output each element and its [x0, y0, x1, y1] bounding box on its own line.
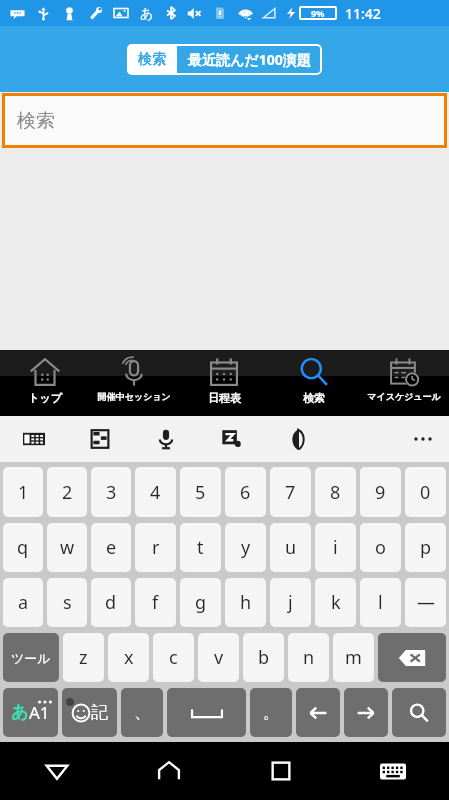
staticText: o — [375, 535, 386, 560]
button[interactable]: 0 — [405, 467, 446, 517]
button[interactable]: Home — [113, 742, 225, 800]
staticText: 4 — [150, 480, 161, 505]
button[interactable]: l — [360, 578, 401, 627]
button[interactable]: g — [180, 578, 221, 627]
staticText: トップ — [28, 391, 62, 405]
button[interactable]: 9 — [360, 467, 401, 517]
staticText: — — [417, 590, 435, 615]
staticText: v — [214, 645, 224, 670]
button[interactable]: 6 — [225, 467, 266, 517]
button[interactable]: 最近読んだ100演題 — [177, 44, 322, 75]
button[interactable]: Voice input — [133, 416, 199, 462]
button[interactable]: Recent apps — [225, 742, 337, 800]
button[interactable]: Backspace — [378, 633, 446, 682]
button[interactable]: Layout options — [67, 416, 133, 462]
staticText: 9% — [311, 7, 325, 19]
button[interactable]: Move cursor left — [296, 688, 340, 737]
button[interactable]: c — [153, 633, 194, 682]
button[interactable]: k — [315, 578, 356, 627]
button[interactable]: Move cursor right — [344, 688, 388, 737]
button[interactable]: y — [225, 523, 266, 572]
button[interactable]: 5 — [180, 467, 221, 517]
button[interactable]: Search — [392, 688, 446, 737]
staticText: n — [303, 645, 315, 670]
button[interactable]: z — [63, 633, 104, 682]
button[interactable]: i — [315, 523, 356, 572]
staticText: 8 — [330, 480, 341, 505]
button[interactable]: Emoji and symbols — [62, 688, 117, 737]
staticText: 検索 — [17, 109, 55, 133]
button[interactable]: u — [270, 523, 311, 572]
button[interactable]: o — [360, 523, 401, 572]
button[interactable]: t — [180, 523, 221, 572]
staticText: p — [420, 535, 432, 560]
staticText: f — [152, 590, 159, 615]
button[interactable]: m — [333, 633, 374, 682]
button[interactable]: 検索 — [127, 44, 177, 75]
staticText: t — [197, 535, 204, 560]
button[interactable]: Back — [0, 742, 113, 800]
staticText: 開催中セッション — [97, 391, 171, 402]
button[interactable]: d — [91, 578, 131, 627]
button[interactable]: 検索 — [269, 350, 359, 416]
staticText: ツール — [11, 650, 51, 666]
staticText: 11:42 — [345, 4, 381, 23]
staticText: k — [331, 590, 341, 615]
button[interactable]: 8 — [315, 467, 356, 517]
button[interactable]: Switch keyboard — [337, 742, 449, 800]
staticText: h — [240, 590, 252, 615]
button[interactable]: 開催中セッション — [89, 350, 179, 416]
staticText: m — [345, 645, 362, 670]
staticText: e — [106, 535, 117, 560]
staticText: 9 — [375, 480, 386, 505]
button[interactable]: e — [91, 523, 131, 572]
button[interactable]: Input mode — [3, 688, 58, 737]
button[interactable]: 。 — [250, 688, 292, 737]
button[interactable]: 2 — [47, 467, 87, 517]
button[interactable]: p — [405, 523, 446, 572]
button[interactable]: Keyboard layout — [0, 416, 67, 462]
button[interactable]: Handwriting — [199, 416, 265, 462]
button[interactable]: マイスケジュール — [359, 350, 449, 416]
button[interactable]: a — [3, 578, 43, 627]
staticText: マイスケジュール — [367, 391, 441, 402]
staticText: l — [378, 590, 383, 615]
button[interactable]: ツール — [3, 633, 59, 682]
button[interactable]: 日程表 — [179, 350, 269, 416]
button[interactable]: トップ — [0, 350, 89, 416]
staticText: 検索 — [303, 391, 325, 405]
button[interactable]: 、 — [121, 688, 163, 737]
staticText: 検索 — [138, 51, 166, 69]
button[interactable]: h — [225, 578, 266, 627]
button[interactable]: v — [198, 633, 239, 682]
button[interactable]: q — [3, 523, 43, 572]
staticText: 記 — [91, 702, 108, 723]
button[interactable]: 検索 — [5, 96, 444, 145]
staticText: A1 — [29, 701, 50, 724]
staticText: z — [79, 645, 88, 670]
button[interactable]: 1 — [3, 467, 43, 517]
button[interactable]: b — [243, 633, 284, 682]
button[interactable]: r — [135, 523, 176, 572]
staticText: 0 — [420, 480, 431, 505]
button[interactable]: 3 — [91, 467, 131, 517]
button[interactable]: x — [108, 633, 149, 682]
staticText: x — [124, 645, 134, 670]
staticText: d — [105, 590, 117, 615]
staticText: 、 — [134, 702, 151, 723]
button[interactable]: — — [405, 578, 446, 627]
staticText: 3 — [106, 480, 117, 505]
button[interactable]: More options — [397, 416, 449, 462]
button[interactable]: n — [288, 633, 329, 682]
button[interactable]: 7 — [270, 467, 311, 517]
button[interactable]: s — [47, 578, 87, 627]
button[interactable]: j — [270, 578, 311, 627]
button[interactable]: Clipboard — [265, 416, 331, 462]
button[interactable]: f — [135, 578, 176, 627]
button[interactable]: w — [47, 523, 87, 572]
button[interactable]: 4 — [135, 467, 176, 517]
staticText: s — [63, 590, 72, 615]
button[interactable]: Space — [167, 688, 246, 737]
staticText: g — [195, 590, 207, 615]
staticText: あ — [11, 702, 29, 723]
